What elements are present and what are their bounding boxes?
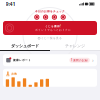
button[interactable]: キャンペーン	[60, 14, 66, 20]
button[interactable]: くじ一覧を見る	[37, 36, 63, 40]
staticText: 1週間の記録	[71, 58, 88, 62]
staticText: 歩数	[11, 72, 17, 75]
staticText: 9:41	[5, 0, 15, 8]
staticText: ›	[92, 57, 94, 64]
button[interactable]: キャンペーン	[34, 14, 40, 20]
staticText: くじを獲得!	[45, 24, 61, 28]
staticText: 健康レポート	[13, 59, 31, 62]
staticText: 今日のお得をチェック	[35, 10, 65, 13]
button[interactable]: ダッシュボード	[0, 42, 50, 50]
button[interactable]: キャンペーン	[51, 14, 57, 20]
button[interactable]: 健康レポート	[3, 54, 97, 66]
staticText: くじ一覧を見る	[41, 37, 62, 40]
button[interactable]: チャレンジ	[50, 42, 100, 50]
staticText: ダッシュボード	[11, 43, 39, 48]
button[interactable]: くじを獲得!	[0, 21, 100, 35]
button[interactable]: キャンペーン	[42, 14, 49, 20]
staticText: チャレンジ	[65, 43, 85, 48]
staticText: ポイントでもっとおトクに	[35, 28, 71, 32]
